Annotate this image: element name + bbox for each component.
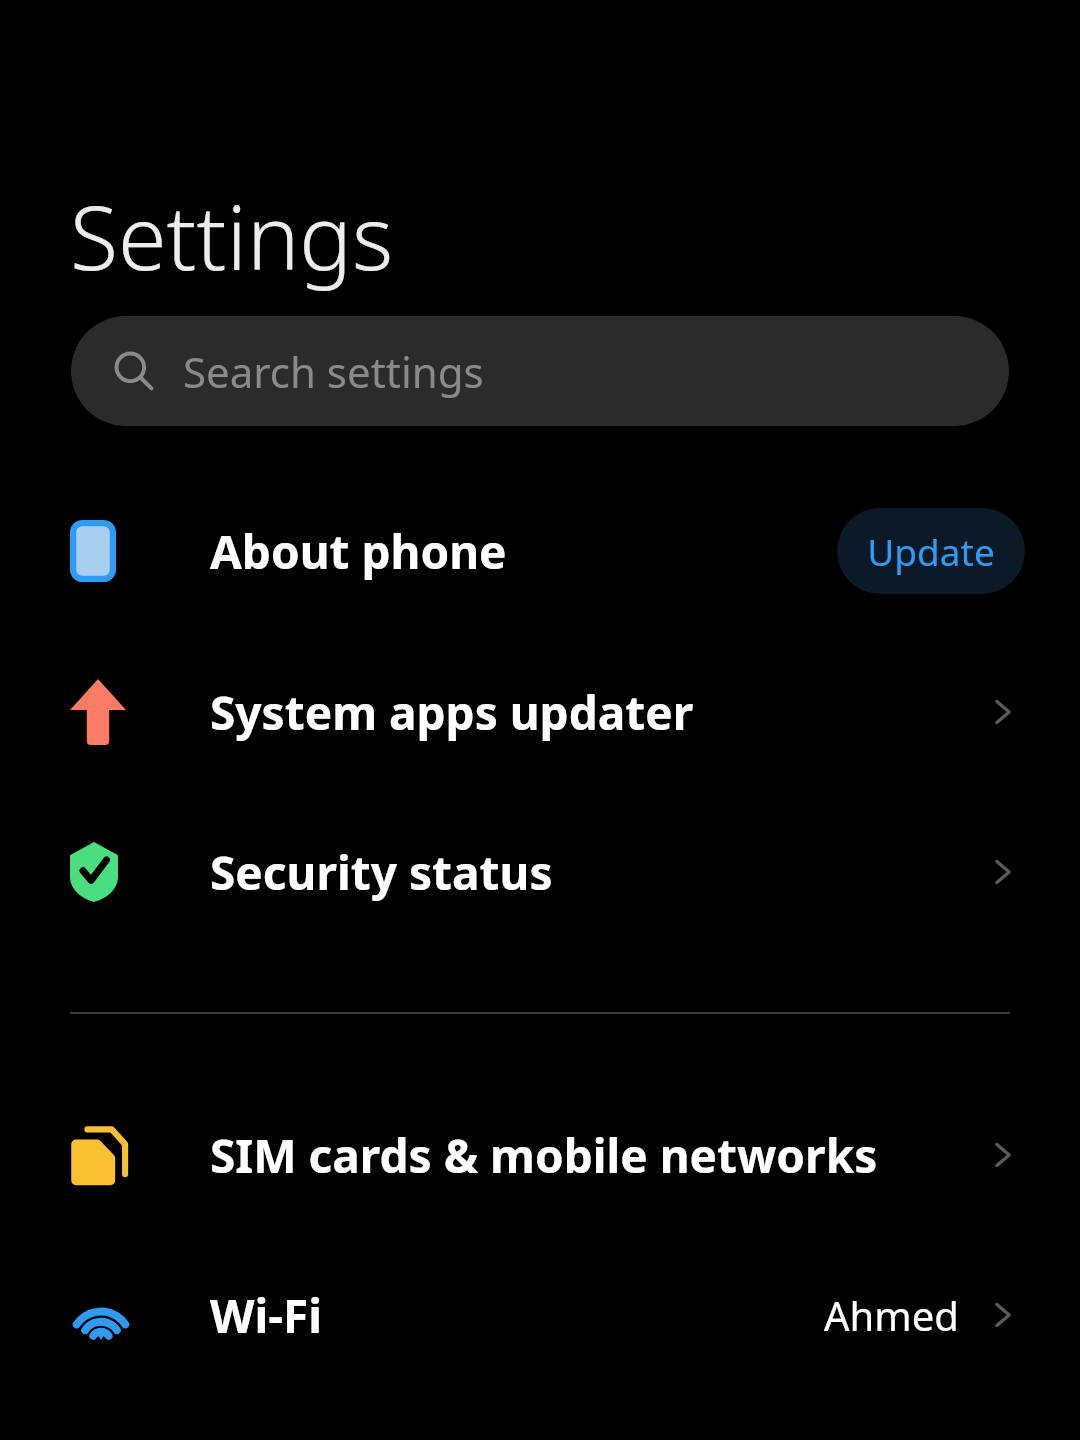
staticText: Ahmed	[824, 1288, 959, 1342]
button[interactable]: Wi-Fi	[0, 1235, 1080, 1395]
other: Security status	[70, 842, 118, 902]
other: Open	[981, 690, 1025, 734]
other: About phone	[70, 520, 116, 582]
button[interactable]: Update	[837, 508, 1025, 594]
staticText: About phone	[210, 520, 507, 583]
button[interactable]: Search settings	[71, 316, 1009, 426]
staticText: Settings	[70, 176, 394, 296]
staticText: SIM cards & mobile networks	[210, 1124, 878, 1187]
staticText: Security status	[210, 841, 553, 904]
other: Open	[981, 850, 1025, 894]
staticText: System apps updater	[210, 681, 694, 744]
other: System apps updater	[70, 679, 126, 745]
other: SIM cards	[70, 1123, 128, 1187]
other: Wi-Fi	[70, 1290, 132, 1340]
other: Open	[981, 1293, 1025, 1337]
staticText: Update	[867, 526, 995, 576]
button[interactable]: Security status	[0, 792, 1080, 952]
button[interactable]: About phone	[0, 471, 1080, 631]
button[interactable]: System apps updater	[0, 632, 1080, 792]
staticText: Search settings	[183, 343, 484, 400]
staticText: Wi-Fi	[210, 1284, 322, 1347]
button[interactable]: SIM cards	[0, 1075, 1080, 1235]
other: Open	[981, 1133, 1025, 1177]
